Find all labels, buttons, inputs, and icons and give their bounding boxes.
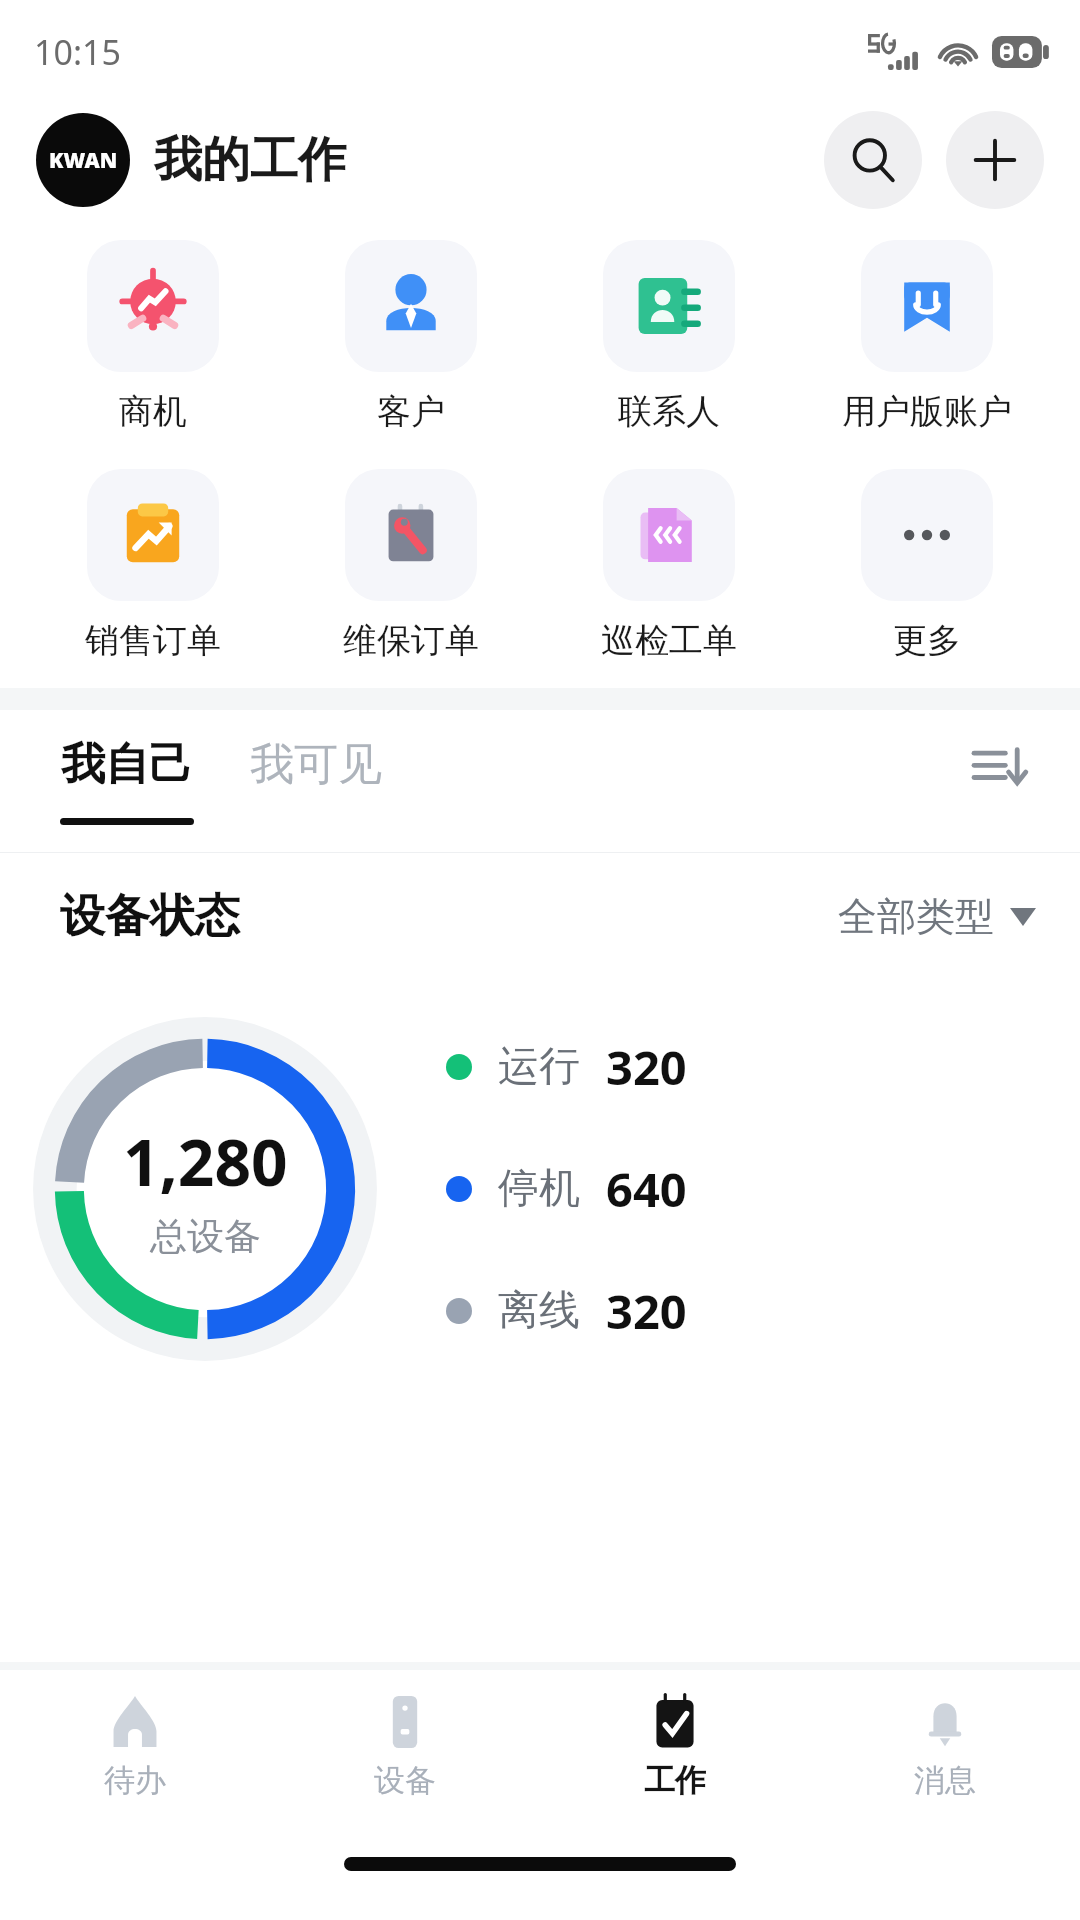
staticText: 离线 <box>498 1285 580 1337</box>
button[interactable]: Search <box>824 111 922 209</box>
button[interactable]: 用户版账户 <box>798 236 1056 437</box>
button[interactable]: 销售订单 <box>24 465 282 666</box>
staticText: 商机 <box>119 390 187 433</box>
staticText: 用户版账户 <box>842 390 1012 433</box>
button[interactable]: KWAN logo <box>36 113 130 207</box>
button[interactable]: 联系人 <box>540 236 798 437</box>
staticText: 10:15 <box>34 29 121 75</box>
button[interactable]: 消息 <box>810 1670 1080 1822</box>
button[interactable]: 更多 <box>798 465 1056 666</box>
button[interactable]: 设备 <box>270 1670 540 1822</box>
button[interactable]: Add <box>946 111 1044 209</box>
button[interactable]: 我可见 <box>250 737 382 825</box>
staticText: 销售订单 <box>85 619 221 662</box>
staticText: 设备 <box>374 1761 436 1800</box>
button[interactable]: 全部类型 <box>838 892 1036 941</box>
staticText: 停机 <box>498 1163 580 1215</box>
staticText: 1,280 <box>123 1118 288 1205</box>
staticText: 维保订单 <box>343 619 479 662</box>
staticText: 我的工作 <box>154 130 346 190</box>
staticText: 巡检工单 <box>601 619 737 662</box>
staticText: 320 <box>606 1279 687 1343</box>
staticText: 我可见 <box>250 737 382 792</box>
staticText: 总设备 <box>150 1213 261 1260</box>
staticText: 联系人 <box>618 390 720 433</box>
button[interactable]: 客户 <box>282 236 540 437</box>
staticText: KWAN <box>49 146 118 175</box>
staticText: 我自己 <box>61 737 193 792</box>
button[interactable]: 我自己 <box>60 737 194 825</box>
staticText: 更多 <box>893 619 961 662</box>
staticText: 工作 <box>644 1761 706 1800</box>
staticText: 设备状态 <box>60 888 240 945</box>
staticText: 消息 <box>914 1761 976 1800</box>
staticText: 320 <box>606 1035 687 1099</box>
staticText: 待办 <box>104 1761 166 1800</box>
button[interactable]: 维保订单 <box>282 465 540 666</box>
button[interactable]: 待办 <box>0 1670 270 1822</box>
staticText: 640 <box>606 1157 687 1221</box>
button[interactable]: 巡检工单 <box>540 465 798 666</box>
button[interactable]: 工作 <box>540 1670 810 1822</box>
staticText: 运行 <box>498 1041 580 1093</box>
button[interactable]: 商机 <box>24 236 282 437</box>
staticText: 全部类型 <box>838 892 994 941</box>
button[interactable]: Sort <box>966 746 1036 816</box>
staticText: 客户 <box>377 390 445 433</box>
